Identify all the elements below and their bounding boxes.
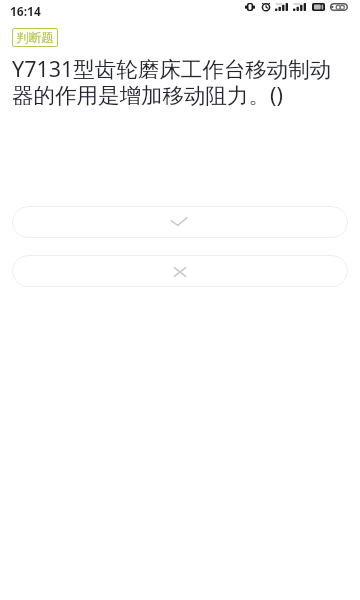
button[interactable]: 正确 xyxy=(12,206,348,238)
button[interactable]: 判断题 xyxy=(12,28,58,47)
staticText: Y7131型齿轮磨床工作台移动制动器的作用是增加移动阻力。() xyxy=(12,54,348,109)
staticText: 16:14 xyxy=(10,3,41,19)
staticText: 判断题 xyxy=(16,30,54,46)
button[interactable]: 错误 xyxy=(12,255,348,287)
